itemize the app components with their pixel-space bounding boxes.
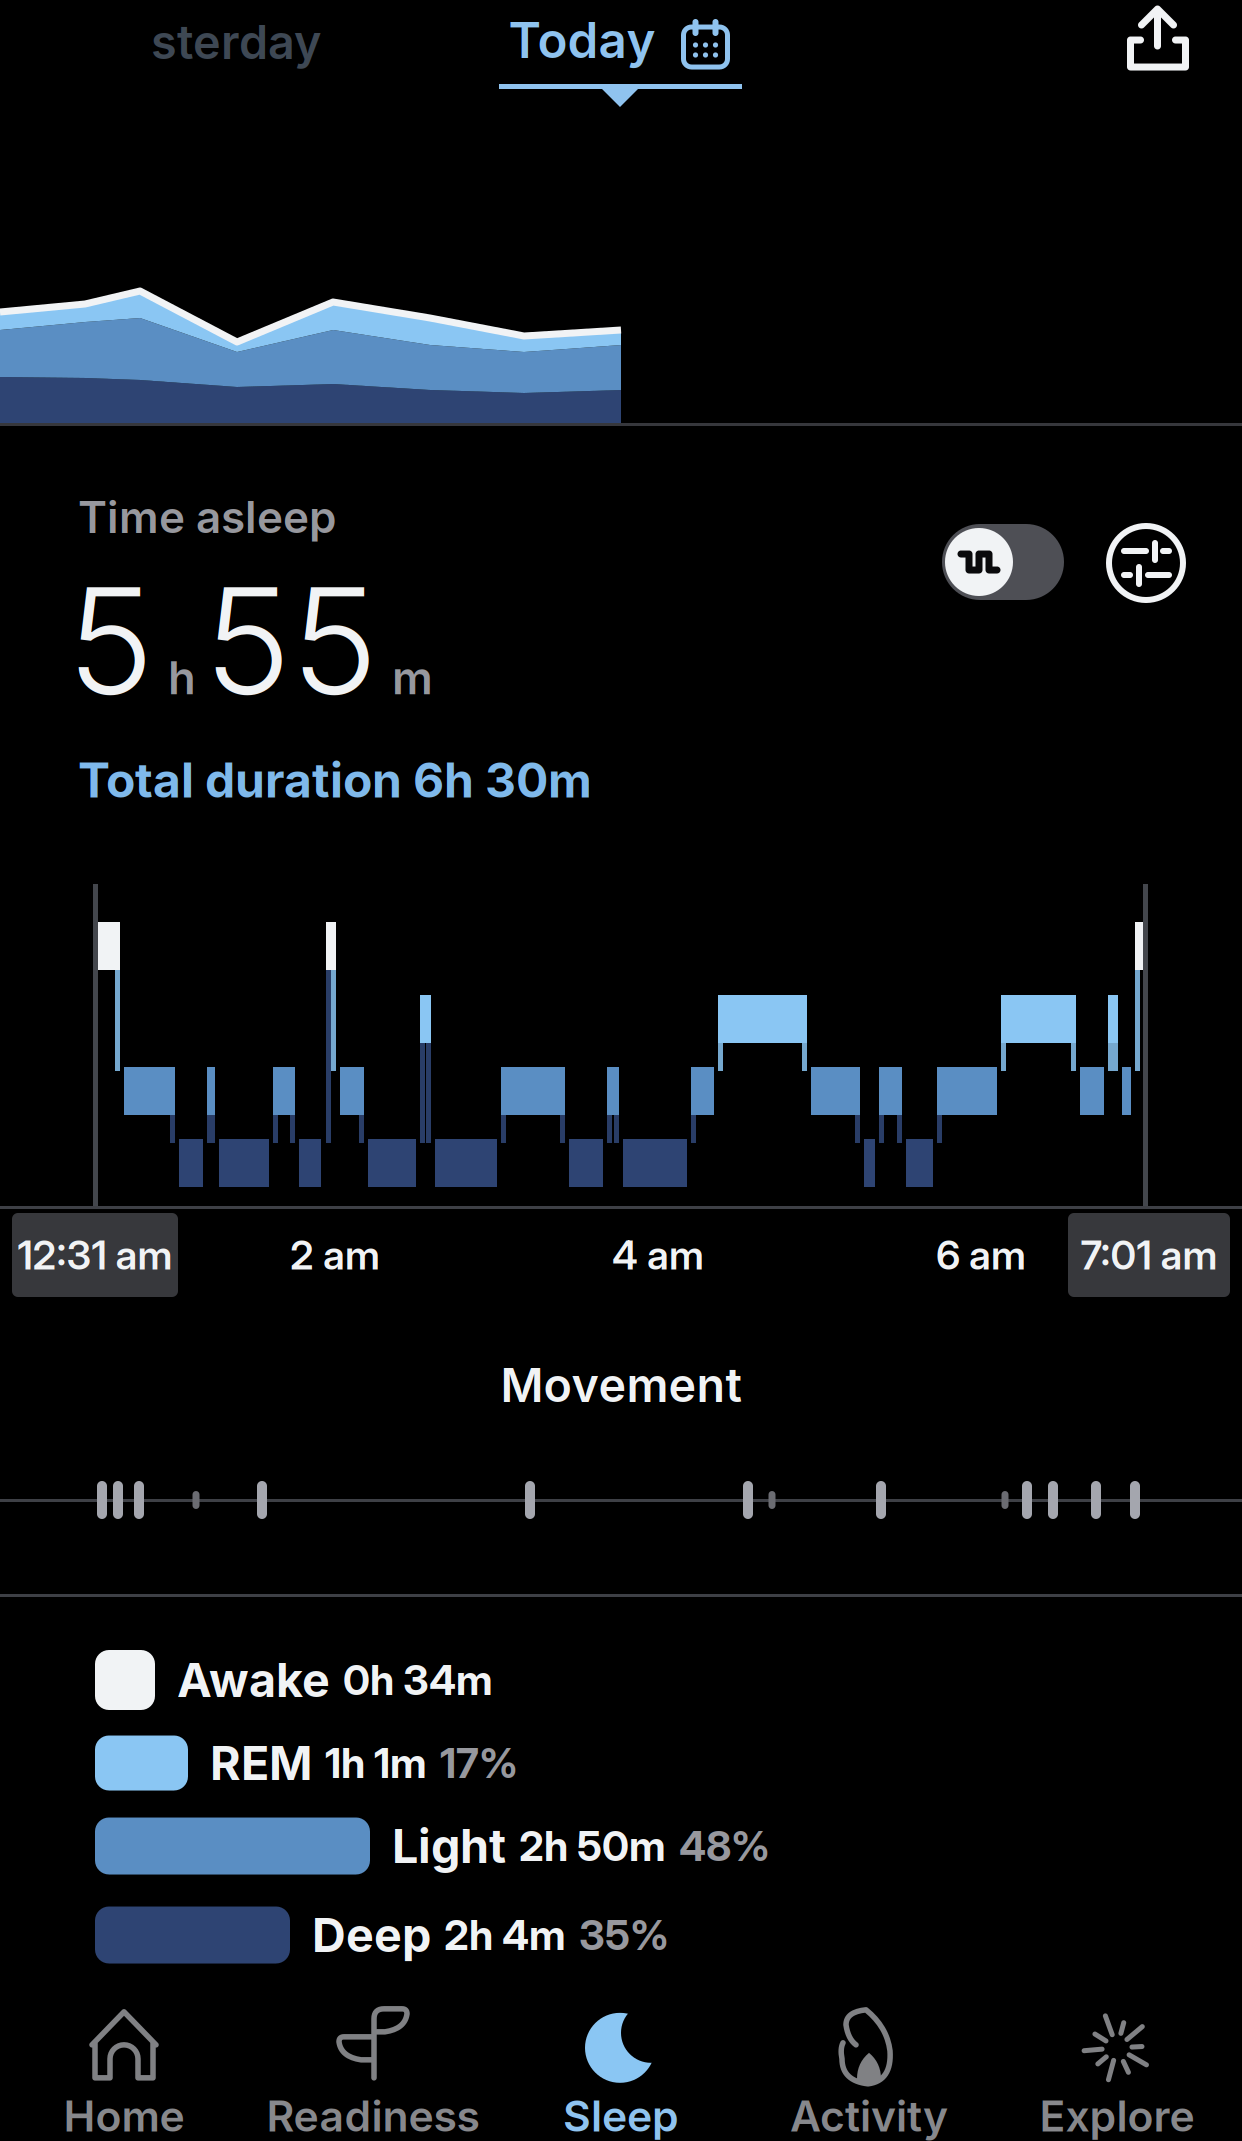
staticText: 7:01 am [1080,1231,1217,1279]
button[interactable] [942,524,1064,600]
staticText: sterday [151,14,321,70]
button[interactable]: Sleep [501,2012,741,2136]
staticText: 48% [679,1822,770,1870]
staticText: 17% [440,1739,518,1787]
staticText: 5 [67,554,154,727]
staticText: Readiness [266,2091,479,2141]
staticText: Light [392,1818,506,1874]
staticText: 4 am [612,1231,704,1279]
button[interactable]: Today [508,9,729,71]
staticText: Movement [500,1357,741,1413]
button[interactable]: 12:31 am [12,1213,178,1297]
staticText: Explore [1039,2091,1194,2141]
button[interactable]: Readiness [253,2012,493,2136]
staticText: Home [63,2091,184,2141]
staticText: 55 [204,554,378,727]
staticText: 1h 1m [325,1739,427,1787]
button[interactable]: sterday [151,14,321,70]
staticText: 2 am [290,1231,380,1279]
staticText: REM [210,1735,312,1791]
staticText: 12:31 am [17,1231,172,1279]
staticText: h [168,651,196,705]
staticText: Today [508,11,655,69]
button[interactable]: Explore [997,2012,1237,2136]
staticText: Deep [312,1907,431,1963]
staticText: Total duration 6h 30m [78,752,592,808]
staticText: m [392,651,433,705]
staticText: 2h 4m [444,1911,566,1959]
staticText: 0h 34m [343,1656,493,1704]
button[interactable] [1124,4,1191,74]
button[interactable] [1109,526,1183,600]
button[interactable]: 7:01 am [1068,1213,1230,1297]
staticText: Time asleep [78,491,336,543]
button[interactable]: Home [4,2012,244,2136]
staticText: Sleep [563,2091,679,2141]
button[interactable]: Activity [749,2012,989,2136]
staticText: 6 am [936,1231,1026,1279]
staticText: 2h 50m [519,1822,666,1870]
staticText: Activity [790,2091,948,2141]
staticText: Awake [177,1652,330,1708]
staticText: 35% [579,1911,669,1959]
